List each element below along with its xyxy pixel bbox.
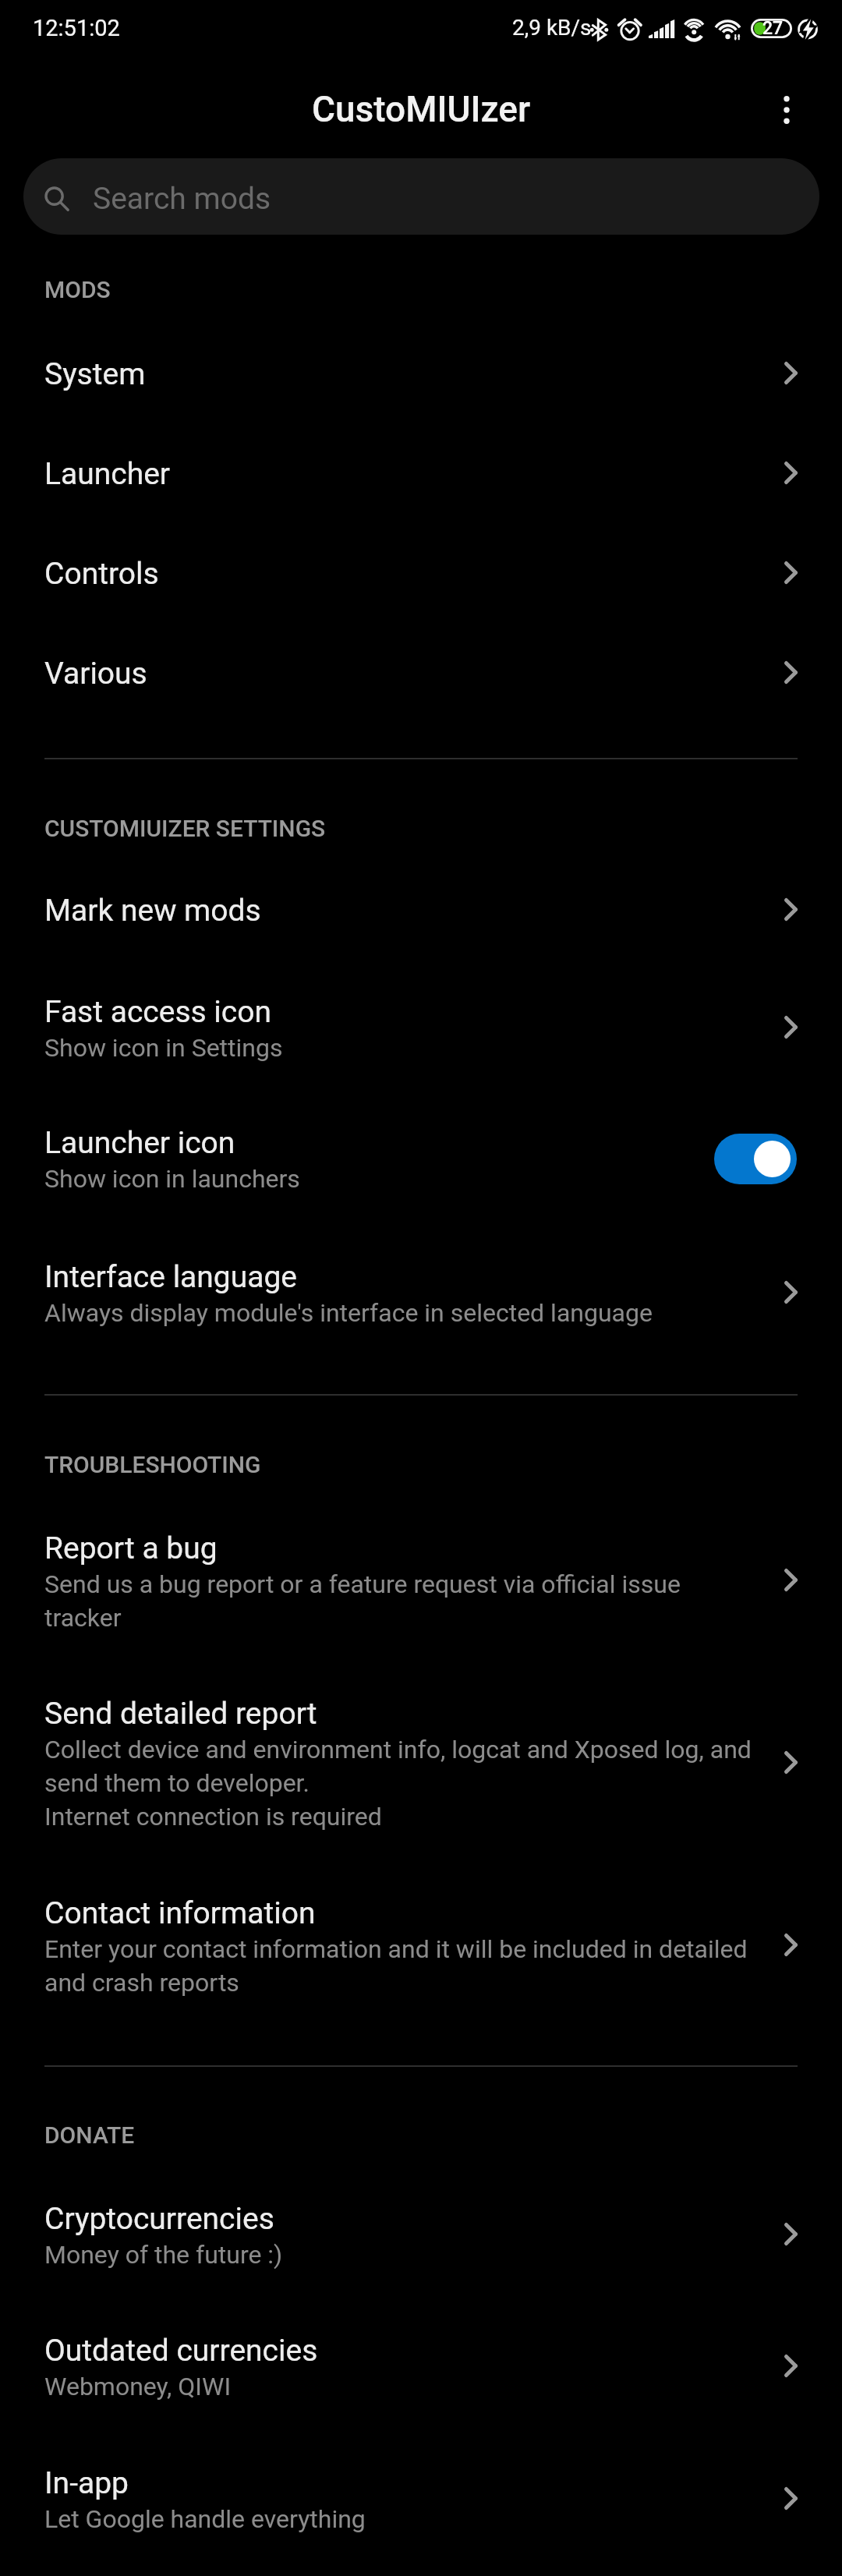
button[interactable]: Fast access icon [0, 975, 842, 1108]
staticText: CustoMIUIzer [312, 88, 531, 130]
staticText: Controls [44, 556, 159, 592]
button[interactable]: More options [749, 73, 824, 147]
staticText: Always display module's interface in sel… [44, 1298, 653, 1328]
button[interactable]: Controls [0, 537, 842, 637]
staticText: MODS [44, 276, 111, 303]
staticText: Let Google handle everything [44, 2504, 366, 2534]
staticText: Webmoney, QIWI [44, 2372, 232, 2401]
button[interactable]: System [0, 338, 842, 437]
button[interactable]: Launcher [0, 437, 842, 537]
staticText: Send us a bug report or a feature reques… [44, 1569, 755, 1633]
staticText: Interface language [44, 1259, 298, 1295]
staticText: Money of the future :) [44, 2240, 283, 2270]
button[interactable]: In-app [0, 2447, 842, 2552]
button[interactable]: Outdated currencies [0, 2314, 842, 2447]
button[interactable]: Cryptocurrencies [0, 2182, 842, 2314]
button[interactable]: Contact information [0, 1877, 842, 2041]
button[interactable]: Launcher icon [0, 1106, 842, 1239]
button[interactable]: Report a bug [0, 1512, 842, 1677]
staticText: TROUBLESHOOTING [44, 1451, 261, 1478]
staticText: 27 [762, 18, 784, 37]
staticText: In-app [44, 2465, 129, 2501]
button[interactable]: Send detailed report [0, 1677, 842, 1877]
staticText: Show icon in Settings [44, 1033, 283, 1063]
staticText: Search mods [93, 181, 271, 217]
staticText: System [44, 356, 146, 392]
staticText: CUSTOMIUIZER SETTINGS [44, 815, 326, 842]
staticText: Send detailed report [44, 1696, 317, 1732]
staticText: Outdated currencies [44, 2333, 318, 2369]
staticText: Collect device and environment info, log… [44, 1735, 755, 1831]
staticText: Fast access icon [44, 994, 272, 1030]
button[interactable]: Mark new mods [0, 874, 842, 974]
button[interactable]: Search mods [23, 158, 819, 235]
staticText: Various [44, 656, 147, 692]
staticText: Launcher [44, 456, 171, 492]
staticText: Mark new mods [44, 893, 261, 929]
button[interactable]: Interface language [0, 1240, 842, 1370]
staticText: Enter your contact information and it wi… [44, 1934, 755, 1997]
staticText: Show icon in launchers [44, 1164, 300, 1194]
staticText: Contact information [44, 1895, 316, 1931]
staticText: Cryptocurrencies [44, 2201, 274, 2237]
staticText: Report a bug [44, 1530, 218, 1566]
button[interactable]: Various [0, 637, 842, 737]
staticText: DONATE [44, 2121, 135, 2149]
staticText: Launcher icon [44, 1125, 235, 1161]
staticText: 2,9 kB/s [512, 15, 592, 41]
staticText: 12:51:02 [33, 15, 120, 41]
